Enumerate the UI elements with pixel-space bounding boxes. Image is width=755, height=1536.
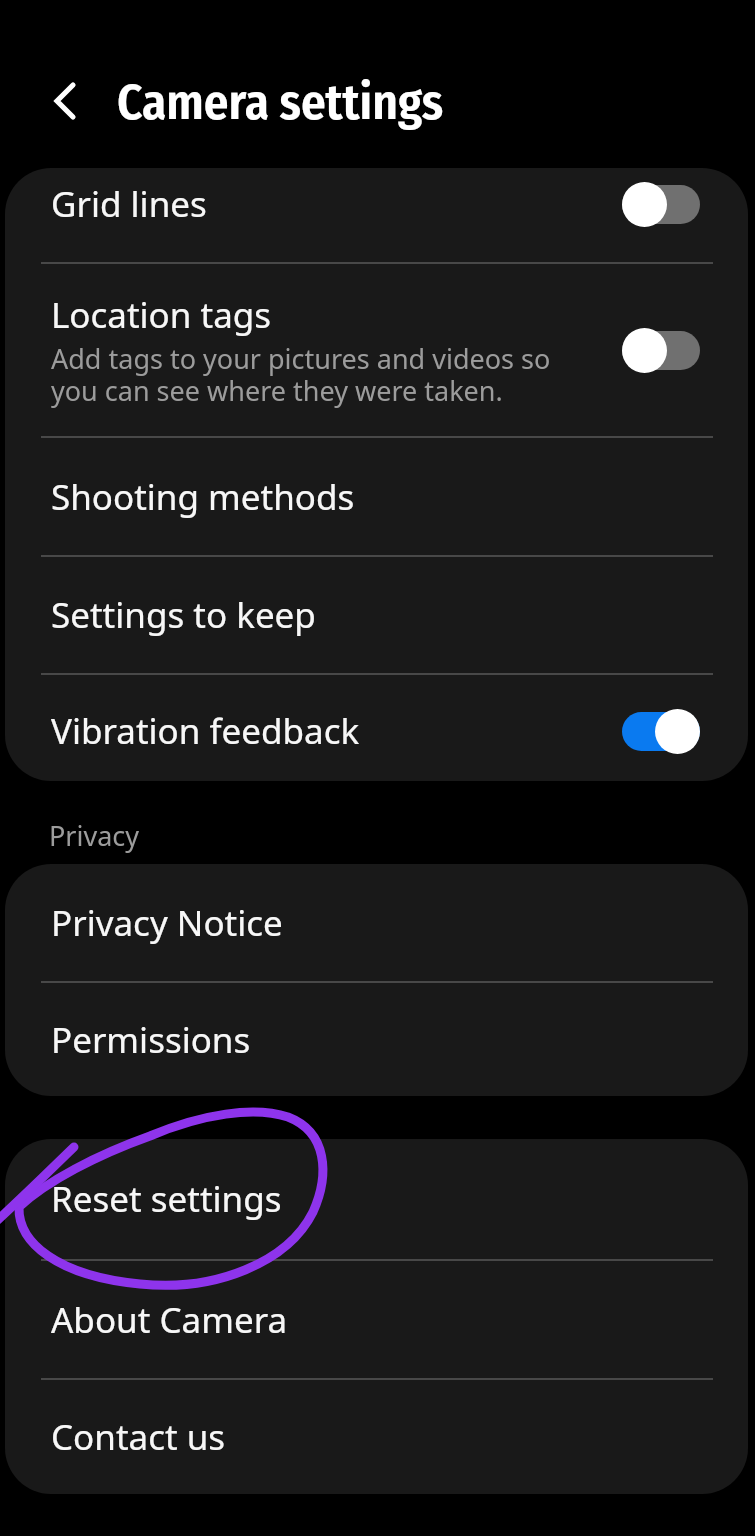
button[interactable]: Contact us — [5, 1380, 748, 1494]
staticText: Grid lines — [51, 180, 207, 228]
staticText: Location tags — [51, 291, 272, 339]
staticText: Camera settings — [117, 73, 443, 132]
button[interactable]: Vibration feedback — [5, 675, 748, 781]
staticText: Privacy — [49, 817, 140, 854]
button[interactable]: Permissions — [5, 983, 748, 1096]
button[interactable]: Switch on — [611, 699, 711, 763]
staticText: Settings to keep — [51, 591, 316, 639]
staticText: Shooting methods — [51, 473, 355, 521]
staticText: Reset settings — [51, 1175, 282, 1223]
button[interactable]: Privacy Notice — [5, 864, 748, 981]
button[interactable]: Grid lines — [5, 168, 748, 262]
button[interactable]: Shooting methods — [5, 438, 748, 555]
staticText: Contact us — [51, 1413, 226, 1461]
button[interactable]: Reset settings — [5, 1139, 748, 1259]
staticText: Add tags to your pictures and videos so … — [51, 340, 551, 409]
button[interactable]: Location tags — [5, 264, 748, 436]
button[interactable]: Settings to keep — [5, 557, 748, 673]
button[interactable]: About Camera — [5, 1261, 748, 1378]
button[interactable]: Back — [29, 74, 83, 128]
staticText: Privacy Notice — [51, 899, 283, 947]
staticText: Vibration feedback — [51, 707, 360, 755]
staticText: Permissions — [51, 1016, 251, 1064]
staticText: About Camera — [51, 1296, 288, 1344]
button[interactable]: Switch off — [611, 172, 711, 236]
button[interactable]: Switch off — [611, 318, 711, 382]
